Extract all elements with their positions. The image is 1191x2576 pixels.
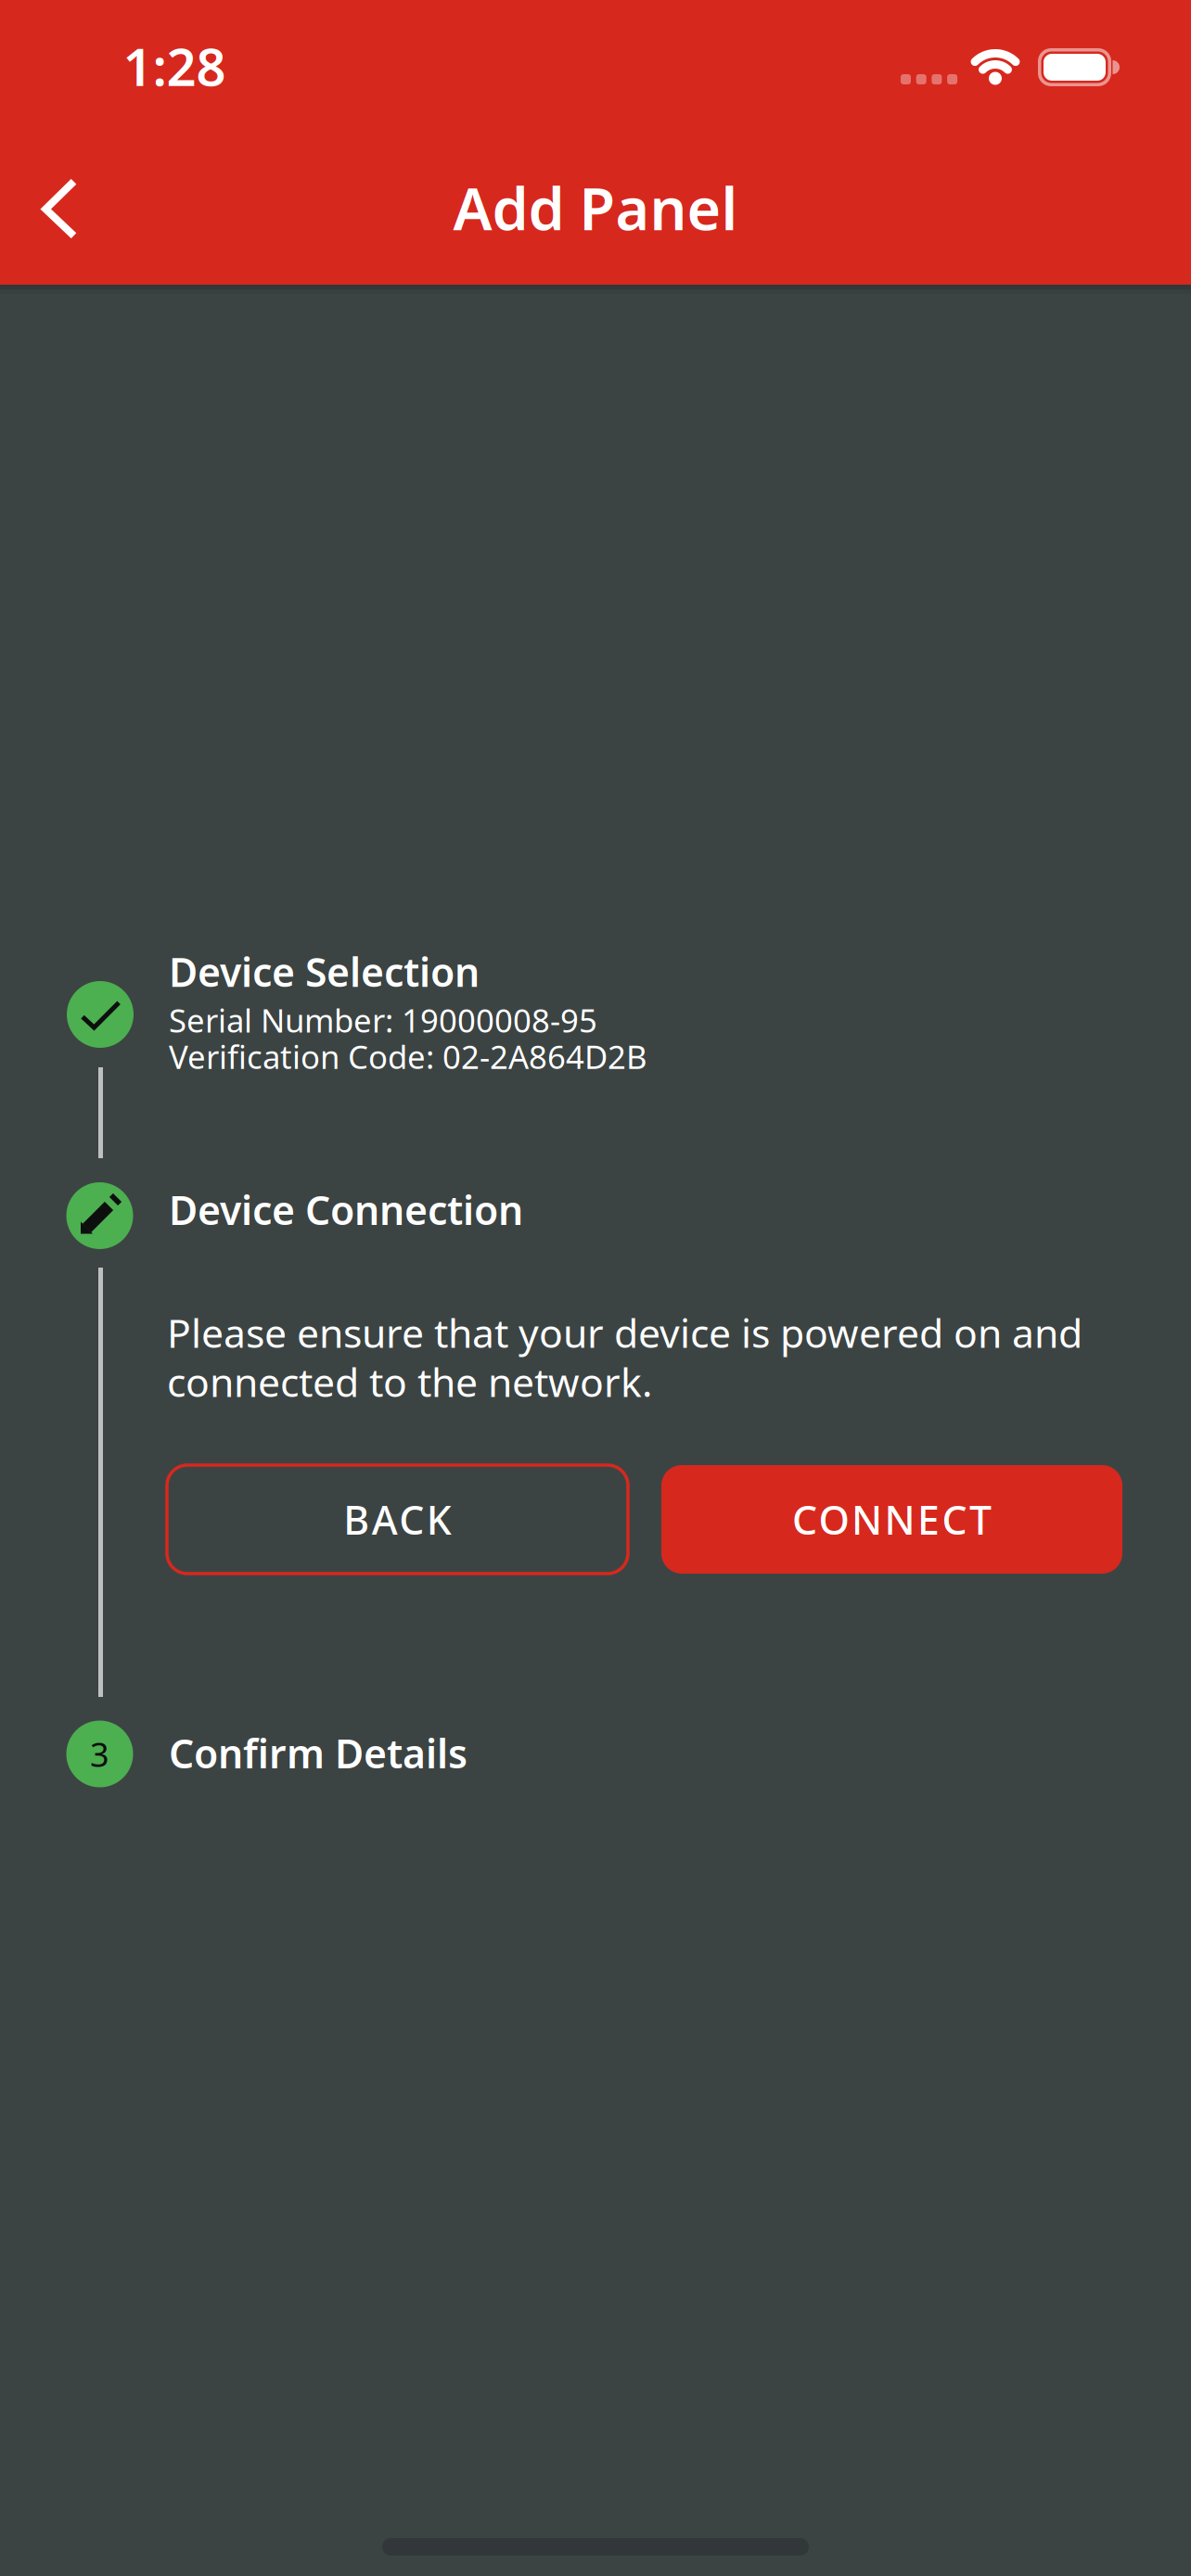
staticText: Serial Number: 19000008-95 [169,999,597,1041]
staticText: connected to the network. [167,1355,652,1408]
staticText: Verification Code: 02-2A864D2B [169,1035,647,1078]
staticText: Please ensure that your device is powere… [167,1306,1082,1359]
button[interactable]: BACK [167,1465,628,1574]
staticText: 3 [90,1732,109,1776]
staticText: CONNECT [792,1493,992,1546]
staticText: Device Connection [169,1183,523,1236]
staticText: BACK [343,1493,451,1546]
staticText: Device Selection [169,945,480,998]
button[interactable]: Back [8,153,110,264]
button[interactable]: CONNECT [661,1465,1122,1574]
staticText: Add Panel [453,169,738,246]
staticText: Confirm Details [169,1727,467,1779]
staticText: 1:28 [123,31,226,100]
